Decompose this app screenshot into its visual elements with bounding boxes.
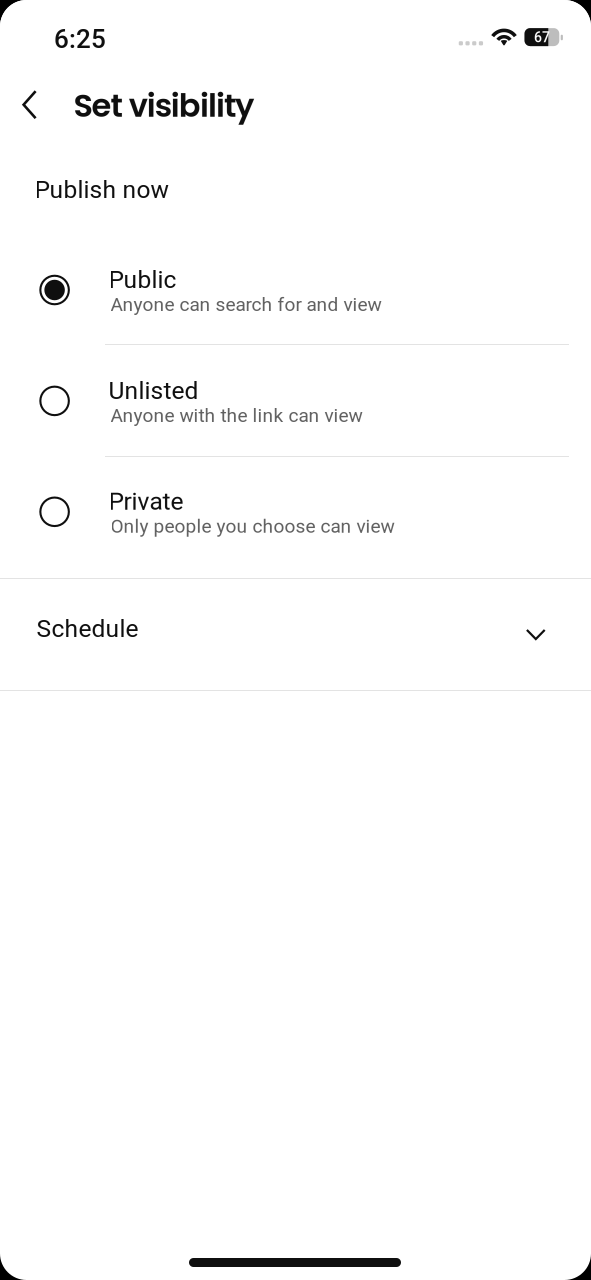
staticText: Private xyxy=(108,487,183,516)
staticText: Set visibility xyxy=(73,83,254,128)
staticText: 67 xyxy=(534,29,550,46)
staticText: 6:25 xyxy=(54,24,106,54)
staticText: Only people you choose can view xyxy=(110,515,394,537)
staticText: Publish now xyxy=(35,175,169,204)
button[interactable]: Unlisted xyxy=(0,345,591,456)
staticText: Anyone with the link can view xyxy=(110,404,362,426)
staticText: Public xyxy=(108,265,176,294)
staticText: Anyone can search for and view xyxy=(110,293,381,316)
button[interactable]: Public xyxy=(0,234,591,345)
staticText: Schedule xyxy=(37,614,139,643)
button[interactable]: Private xyxy=(0,456,591,567)
staticText: Unlisted xyxy=(108,376,198,405)
button[interactable]: Back xyxy=(5,77,55,133)
button[interactable]: Schedule xyxy=(0,578,591,689)
